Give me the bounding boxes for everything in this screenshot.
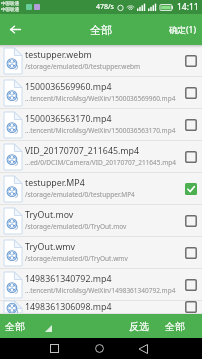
staticText: 中国联通 [1,1,19,7]
button[interactable]: Back [123,338,163,359]
staticText: …tencent/MicroMsg/WeiXin/1500036569960.m… [25,94,176,103]
staticText: 确定(1) [169,24,196,36]
button[interactable]: 1498361306098.mp4 [0,301,202,314]
button[interactable]: 确定(1) [163,14,202,45]
button[interactable]: Select [185,55,197,67]
button[interactable]: Home [79,338,119,359]
staticText: /storage/emulated/0/TryOut.mov [25,222,127,231]
button[interactable]: Select [185,301,197,313]
staticText: testupper.MP4 [25,177,85,189]
button[interactable]: 1500036569960.mp4 [0,77,202,109]
staticText: 全部 [90,23,112,37]
staticText: 1500036563170.mp4 [25,113,112,125]
button[interactable]: Select [185,279,197,291]
staticText: testupper.webm [25,49,92,61]
button[interactable]: Select [185,151,197,163]
staticText: 1500036569960.mp4 [25,81,112,93]
button[interactable]: 1498361340792.mp4 [0,269,202,301]
staticText: …tencent/MicroMsg/WeiXin/1500036563170.m… [25,126,176,135]
staticText: 反选 [129,320,149,333]
staticText: 全部 [165,320,185,333]
button[interactable]: VID_20170707_211645.mp4 [0,141,202,173]
button[interactable]: Select [185,119,197,131]
button[interactable]: Select [185,247,197,259]
staticText: VID_20170707_211645.mp4 [25,145,139,157]
button[interactable]: 反选 [122,314,156,338]
staticText: /storage/emulated/0/TryOut.wmv [25,254,128,263]
staticText: …tencent/MicroMsg/WeiXin/1498361340792.m… [25,286,176,295]
staticText: 中国联通 [1,7,19,13]
staticText: 1498361306098.mp4 [25,301,112,312]
button[interactable]: TryOut.mov [0,205,202,237]
button[interactable]: Back [0,14,31,45]
button[interactable]: Select [185,215,197,227]
button[interactable]: 1500036563170.mp4 [0,109,202,141]
button[interactable]: 全部 [156,314,202,338]
staticText: /storage/emulated/0/testupper.MP4 [25,190,135,199]
button[interactable]: Recents [34,338,74,359]
button[interactable]: Select [185,87,197,99]
staticText: 14:11 [177,1,199,13]
staticText: 478/s [96,2,114,12]
staticText: 全部 [5,320,25,333]
button[interactable]: testupper.webm [0,45,202,77]
staticText: 1498361340792.mp4 [25,273,112,285]
button[interactable]: Selected [185,183,197,195]
staticText: /storage/emulated/0/testupper.webm [25,62,141,71]
button[interactable]: TryOut.wmv [0,237,202,269]
staticText: TryOut.mov [25,209,74,221]
button[interactable]: testupper.MP4 [0,173,202,205]
button[interactable]: 全部 [0,314,57,338]
staticText: …ed/0/DCIM/Camera/VID_20170707_211645.mp… [25,158,177,167]
staticText: TryOut.wmv [25,241,76,253]
